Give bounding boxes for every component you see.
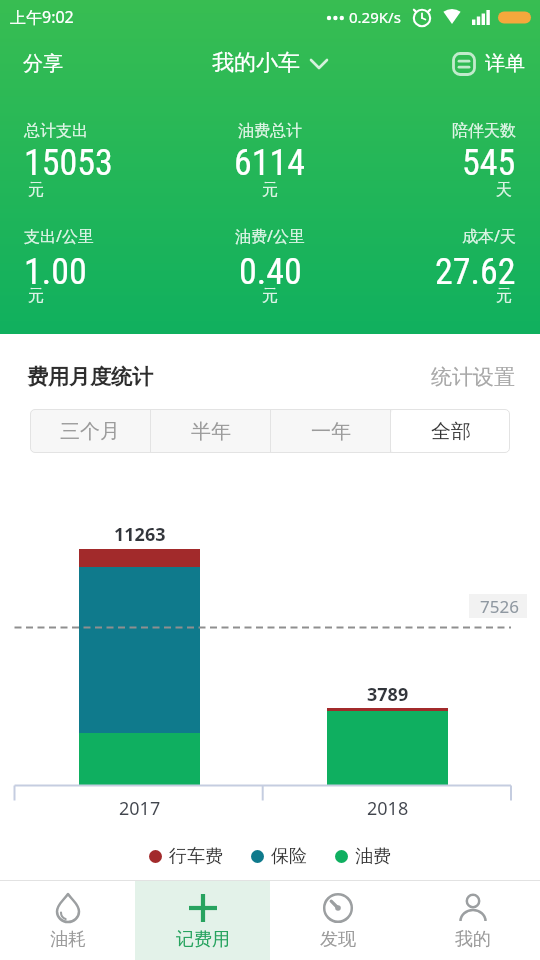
staticText: 三个月	[60, 419, 120, 444]
staticText: 15053	[24, 142, 113, 184]
staticText: 统计设置	[431, 364, 515, 390]
button[interactable]: 一年	[271, 409, 390, 453]
staticText: 油耗	[50, 928, 86, 951]
button[interactable]: 我的小车	[212, 49, 328, 77]
button[interactable]: 半年	[151, 409, 270, 453]
staticText: 支出/公里	[24, 225, 94, 247]
staticText: 成本/天	[462, 225, 516, 247]
button[interactable]: 三个月	[30, 409, 150, 453]
staticText: 2017	[119, 796, 161, 818]
button[interactable]: 我的	[405, 881, 540, 960]
staticText: 保险	[271, 845, 307, 868]
staticText: 行车费	[169, 845, 223, 868]
staticText: 545	[462, 142, 516, 184]
staticText: 详单	[485, 51, 525, 76]
button[interactable]: 记费用	[135, 881, 270, 960]
staticText: 0.40	[239, 251, 302, 293]
staticText: 我的	[455, 928, 491, 951]
staticText: 元	[28, 180, 44, 200]
staticText: 油费	[355, 845, 391, 868]
staticText: 11263	[114, 522, 166, 544]
staticText: 全部	[431, 419, 471, 444]
staticText: 半年	[191, 419, 231, 444]
staticText: 总计支出	[24, 121, 88, 141]
staticText: 27.62	[435, 251, 516, 293]
staticText: 6114	[234, 142, 306, 184]
button[interactable]: 全部	[391, 409, 510, 453]
staticText: 元	[28, 286, 44, 306]
button[interactable]: 发现	[270, 881, 405, 960]
staticText: 7526	[480, 595, 519, 617]
staticText: 油费/公里	[235, 225, 305, 247]
staticText: 0.29K/s	[349, 7, 401, 27]
button[interactable]: 分享	[23, 51, 63, 76]
staticText: 分享	[23, 51, 63, 76]
staticText: 记费用	[176, 928, 230, 951]
button[interactable]: 统计设置	[431, 364, 515, 390]
staticText: 一年	[311, 419, 351, 444]
staticText: 油费总计	[238, 121, 302, 141]
staticText: 费用月度统计	[27, 364, 153, 390]
staticText: 上午9:02	[10, 6, 74, 28]
staticText: 元	[262, 180, 278, 200]
staticText: 元	[262, 286, 278, 306]
staticText: 3789	[367, 682, 409, 704]
staticText: 2018	[367, 796, 409, 818]
staticText: 陪伴天数	[452, 121, 516, 141]
staticText: 我的小车	[212, 49, 300, 77]
staticText: 发现	[320, 928, 356, 951]
staticText: 1.00	[24, 251, 87, 293]
staticText: 天	[496, 180, 512, 200]
staticText: 元	[496, 286, 512, 306]
button[interactable]: 详单	[452, 51, 525, 76]
button[interactable]: 油耗	[0, 881, 135, 960]
